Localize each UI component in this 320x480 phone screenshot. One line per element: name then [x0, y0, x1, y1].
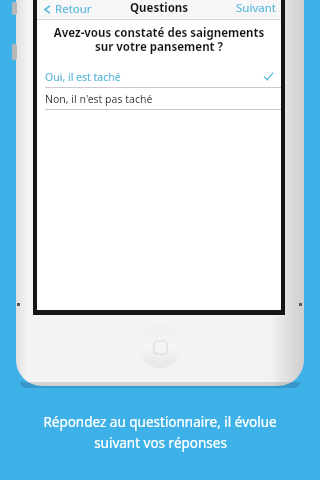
staticText: suivant vos réponses	[94, 434, 227, 452]
staticText: Non, il n'est pas taché	[45, 92, 153, 106]
button[interactable]: Oui, il est taché	[37, 66, 281, 87]
staticText: Questions	[130, 0, 189, 16]
staticText: Suivant	[236, 0, 276, 16]
staticText: Avez-vous constaté des saignements sur v…	[45, 25, 273, 54]
button[interactable]: Home	[139, 326, 181, 368]
staticText: Oui, il est taché	[45, 70, 121, 84]
staticText: Retour	[55, 1, 92, 17]
button[interactable]: Suivant	[236, 0, 276, 16]
button[interactable]: Retour	[43, 0, 92, 20]
staticText: Répondez au questionnaire, il évolue	[43, 413, 277, 431]
button[interactable]: Non, il n'est pas taché	[37, 88, 281, 109]
